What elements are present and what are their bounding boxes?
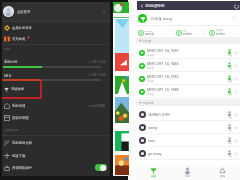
button[interactable]: 手机瘦身大师 — [0, 137, 110, 148]
staticText: 可清理500MB — [89, 104, 106, 108]
staticText: 4.1GB/12.2GB — [89, 73, 106, 77]
staticText: 已加密 — [147, 54, 154, 57]
button[interactable]: 3台 — [176, 27, 206, 38]
button[interactable]: Refresh — [232, 2, 240, 10]
button[interactable]: 天天抽奖 — [0, 33, 110, 44]
staticText: 已开启 — [216, 29, 224, 32]
button[interactable]: MERCURY_5G_F8F2 — [136, 72, 240, 85]
staticText: 开启隐私保护 — [12, 166, 32, 170]
button[interactable]: MERCURY_5G_F88E — [136, 85, 240, 98]
staticText: 手机内存 — [4, 60, 18, 64]
button[interactable]: SD卡 — [0, 70, 110, 82]
button[interactable]: wuri — [136, 134, 240, 147]
staticText: 连接 — [228, 155, 232, 158]
staticText: 360免费WiFi — [145, 3, 165, 8]
staticText: 已加密 — [147, 93, 154, 96]
button[interactable]: 高速下载 — [0, 150, 110, 161]
staticText: 连接 — [228, 93, 232, 96]
staticText: 点击登录 — [17, 10, 31, 14]
button[interactable]: 0.2M/s — [138, 27, 168, 38]
staticText: 连接 — [228, 129, 232, 132]
staticText: 测网速 — [145, 32, 154, 36]
staticText: 安装包管理 — [12, 116, 29, 120]
button[interactable]: 点击登录 — [0, 2, 110, 21]
staticText: 无线传输 — [11, 87, 25, 91]
button[interactable]: 已开启 — [209, 27, 239, 38]
button[interactable]: go away — [136, 147, 240, 160]
staticText: 已加密 — [147, 80, 154, 83]
button[interactable]: MERCURY_5G_FA56 — [136, 59, 240, 72]
staticText: 已加密 — [147, 67, 154, 70]
staticText: 存储 — [4, 47, 10, 51]
staticText: 防蹭网 — [183, 32, 192, 36]
button[interactable]: 发现 — [205, 165, 240, 180]
staticText: go away — [148, 151, 162, 156]
staticText: 已连接 wang — [151, 16, 172, 21]
staticText: 高速下载 — [12, 154, 26, 158]
staticText: 已连接 — [143, 39, 152, 42]
staticText: 附近网络 — [143, 101, 154, 104]
staticText: 3台 — [183, 29, 187, 32]
button[interactable]: 无线传输 — [0, 80, 110, 98]
button[interactable]: wang — [136, 121, 240, 134]
button[interactable]: 开启隐私保护 — [0, 162, 110, 173]
staticText: 0.2M/s — [145, 29, 153, 32]
staticText: MERCURY_5G_F8F2 — [147, 74, 179, 79]
button[interactable]: 手机内存 — [0, 57, 110, 69]
staticText: 连接 — [228, 67, 232, 70]
staticText: wuri — [148, 138, 156, 143]
button[interactable]: 连接 — [136, 165, 170, 180]
staticText: MERCURY_5G_FA56 — [147, 61, 179, 66]
staticText: 会员礼包专享 — [12, 26, 32, 30]
staticText: 防蹭网 — [216, 32, 225, 36]
staticText: 天天抽奖 — [12, 37, 26, 41]
button[interactable]: 手机清理 — [0, 100, 110, 111]
staticText: 360WiFi-8785 — [148, 112, 171, 117]
button[interactable]: Back — [138, 2, 145, 9]
staticText: 我的 — [185, 175, 190, 178]
button[interactable]: 我的 — [170, 165, 205, 180]
button[interactable]: 会员礼包专享 — [0, 22, 110, 33]
staticText: 大家都在用 — [4, 128, 18, 132]
staticText: 发现 — [220, 175, 225, 178]
staticText: 手机瘦身大师 — [12, 141, 32, 145]
staticText: 连接 — [228, 54, 232, 57]
button[interactable]: MERCURY_5G_F6FE — [136, 46, 240, 59]
staticText: 连接 — [151, 175, 156, 178]
button[interactable]: 360WiFi-8785 — [136, 108, 240, 121]
staticText: wang — [148, 125, 158, 130]
staticText: 连接 — [228, 142, 232, 145]
staticText: 连接 — [228, 80, 232, 83]
staticText: 4.1GB/12.2GB — [89, 60, 106, 64]
button[interactable]: 已连接 wang — [136, 12, 240, 25]
button[interactable]: 安装包管理 — [0, 112, 110, 123]
staticText: 连接 — [228, 116, 232, 119]
staticText: MERCURY_5G_F6FE — [147, 48, 179, 53]
staticText: MERCURY_5G_F88E — [147, 87, 179, 92]
staticText: 手机清理 — [12, 104, 26, 108]
staticText: SD卡 — [4, 73, 12, 78]
